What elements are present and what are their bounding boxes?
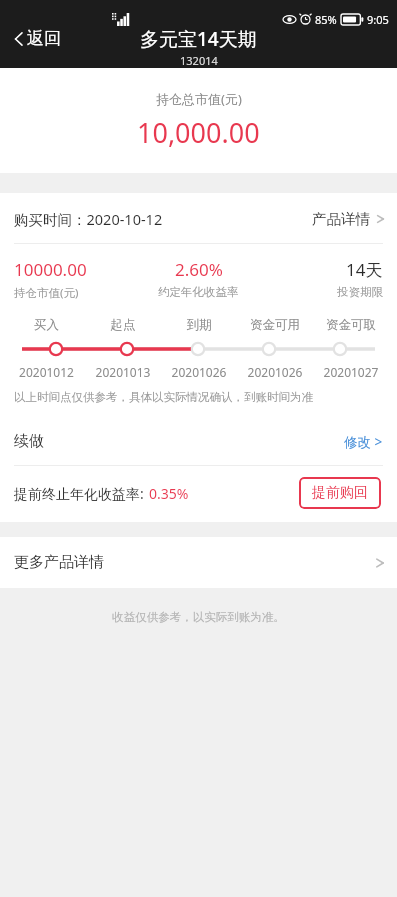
- staticText: 返回: [27, 28, 61, 49]
- staticText: 多元宝14天期: [140, 26, 257, 52]
- staticText: 产品详情: [312, 210, 370, 228]
- staticText: 提前购回: [312, 484, 368, 502]
- staticText: 资金可取: [313, 317, 389, 333]
- staticText: 收益仅供参考，以实际到账为准。: [0, 610, 397, 624]
- staticText: 2.60%: [175, 258, 223, 281]
- staticText: 20201026: [237, 364, 313, 380]
- button[interactable]: 返回: [10, 24, 65, 53]
- staticText: 买入: [8, 317, 85, 333]
- staticText: 约定年化收益率: [158, 285, 239, 299]
- staticText: 20201013: [85, 364, 161, 380]
- button[interactable]: 购买时间：2020-10-12: [0, 193, 397, 243]
- staticText: 10,000.00: [137, 114, 260, 151]
- staticText: 到期: [161, 317, 237, 333]
- staticText: 续做: [14, 432, 44, 451]
- staticText: 0.35%: [149, 484, 189, 503]
- staticText: 持仓市值(元): [14, 285, 79, 301]
- staticText: 提前终止年化收益率:: [14, 484, 144, 503]
- staticText: 起点: [85, 317, 161, 333]
- staticText: 20201012: [8, 364, 85, 380]
- staticText: 132014: [180, 53, 218, 68]
- staticText: 以上时间点仅供参考，具体以实际情况确认，到账时间为准: [14, 390, 313, 404]
- staticText: 更多产品详情: [14, 553, 104, 572]
- staticText: 修改 >: [344, 433, 383, 451]
- staticText: 购买时间：2020-10-12: [14, 209, 163, 229]
- button[interactable]: 续做: [0, 428, 397, 465]
- staticText: 10000.00: [14, 258, 87, 281]
- button[interactable]: 提前购回: [299, 477, 381, 509]
- staticText: 9:05: [367, 12, 389, 27]
- staticText: 85%: [315, 12, 337, 27]
- button[interactable]: 更多产品详情: [0, 537, 397, 588]
- staticText: 20201026: [161, 364, 237, 380]
- staticText: 持仓总市值(元): [156, 90, 242, 108]
- staticText: 14天: [346, 258, 383, 281]
- staticText: 20201027: [313, 364, 389, 380]
- staticText: 投资期限: [337, 285, 383, 299]
- staticText: 资金可用: [237, 317, 313, 333]
